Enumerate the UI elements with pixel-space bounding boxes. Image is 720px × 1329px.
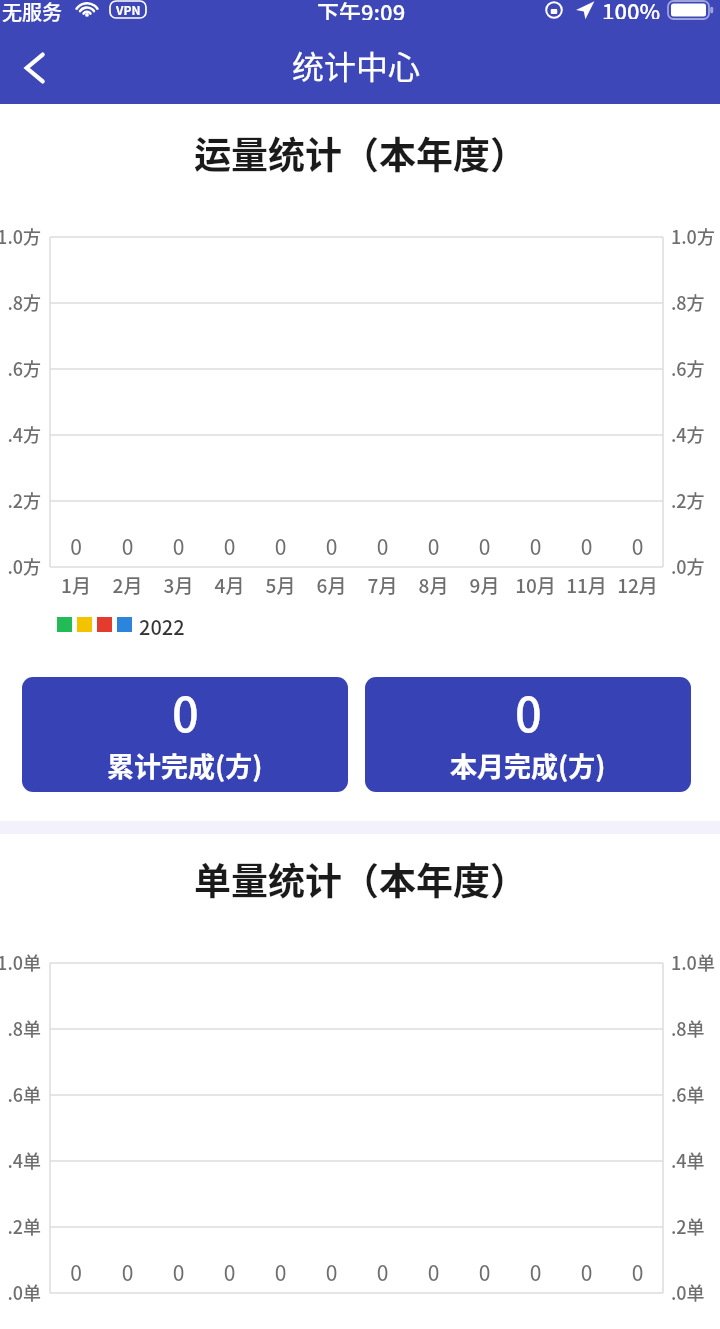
staticText: 12月 [612, 571, 663, 599]
staticText: 0 [306, 531, 357, 561]
staticText: 2月 [102, 571, 153, 599]
staticText: 0 [50, 1257, 102, 1287]
staticText: .8方 [671, 289, 720, 315]
staticText: .0方 [0, 553, 41, 579]
staticText: .6单 [671, 1081, 720, 1107]
staticText: 累计完成(方) [107, 746, 263, 785]
staticText: 6月 [306, 571, 357, 599]
staticText: .4单 [671, 1147, 720, 1173]
staticText: 0 [204, 1257, 255, 1287]
staticText: .0单 [0, 1279, 41, 1305]
staticText: 7月 [357, 571, 408, 599]
staticText: .0单 [671, 1279, 720, 1305]
staticText: 0 [153, 531, 204, 561]
staticText: .4单 [0, 1147, 41, 1173]
staticText: 0 [306, 1257, 357, 1287]
staticText: 1.0单 [671, 949, 720, 975]
staticText: .8单 [0, 1015, 41, 1041]
staticText: 下午9:09 [317, 0, 406, 20]
staticText: 0 [561, 1257, 612, 1287]
staticText: 8月 [408, 571, 459, 599]
staticText: .6方 [0, 355, 41, 381]
staticText: .8方 [0, 289, 41, 315]
staticText: 0 [102, 1257, 153, 1287]
staticText: 9月 [459, 571, 510, 599]
staticText: .2方 [0, 487, 41, 513]
staticText: .4方 [0, 421, 41, 447]
staticText: 4月 [204, 571, 255, 599]
button[interactable]: 0 [22, 677, 348, 792]
staticText: 5月 [255, 571, 306, 599]
staticText: .6方 [671, 355, 720, 381]
staticText: 0 [612, 531, 663, 561]
staticText: .8单 [671, 1015, 720, 1041]
staticText: 无服务 [2, 0, 62, 22]
staticText: 本月完成(方) [450, 746, 606, 785]
staticText: 0 [102, 531, 153, 561]
staticText: 10月 [510, 571, 561, 599]
staticText: 0 [515, 677, 542, 745]
staticText: 2022 [139, 612, 185, 641]
staticText: 0 [612, 1257, 663, 1287]
staticText: 1.0方 [0, 223, 41, 249]
staticText: 3月 [153, 571, 204, 599]
staticText: 统计中心 [292, 42, 421, 88]
staticText: 单量统计（本年度） [194, 852, 527, 906]
staticText: .6单 [0, 1081, 41, 1107]
staticText: .2方 [671, 487, 720, 513]
staticText: 0 [357, 1257, 408, 1287]
staticText: 0 [459, 531, 510, 561]
staticText: 1.0单 [0, 949, 41, 975]
staticText: 0 [357, 531, 408, 561]
staticText: VPN [116, 1, 141, 18]
staticText: 100% [602, 0, 661, 19]
staticText: 0 [561, 531, 612, 561]
staticText: 1.0方 [671, 223, 720, 249]
staticText: 0 [510, 1257, 561, 1287]
staticText: 运量统计（本年度） [194, 126, 527, 180]
staticText: 0 [153, 1257, 204, 1287]
staticText: .2单 [0, 1213, 41, 1239]
staticText: 0 [510, 531, 561, 561]
staticText: 0 [255, 531, 306, 561]
button[interactable]: Back [4, 37, 66, 99]
button[interactable]: 0 [365, 677, 691, 792]
staticText: .4方 [671, 421, 720, 447]
staticText: 0 [50, 531, 102, 561]
staticText: 11月 [561, 571, 612, 599]
staticText: 1月 [50, 571, 102, 599]
staticText: 0 [408, 531, 459, 561]
staticText: 0 [172, 677, 199, 745]
staticText: 0 [204, 531, 255, 561]
staticText: 0 [408, 1257, 459, 1287]
staticText: .2单 [671, 1213, 720, 1239]
staticText: 0 [459, 1257, 510, 1287]
staticText: 0 [255, 1257, 306, 1287]
staticText: .0方 [671, 553, 720, 579]
